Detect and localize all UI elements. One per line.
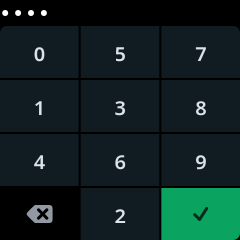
button[interactable]: 3 bbox=[81, 80, 159, 132]
button[interactable]: 8 bbox=[161, 80, 240, 132]
staticText: 2 bbox=[114, 202, 125, 229]
staticText: 4 bbox=[34, 148, 45, 175]
staticText: 5 bbox=[114, 40, 125, 67]
staticText: 3 bbox=[114, 94, 125, 121]
staticText: 7 bbox=[195, 40, 206, 67]
button[interactable]: Delete bbox=[0, 188, 79, 240]
button[interactable]: 9 bbox=[161, 134, 240, 186]
button[interactable]: Confirm bbox=[161, 188, 240, 240]
button[interactable]: 5 bbox=[81, 26, 159, 78]
staticText: 1 bbox=[34, 94, 45, 121]
button[interactable]: 0 bbox=[0, 26, 79, 78]
staticText: 0 bbox=[34, 40, 45, 67]
button[interactable]: 6 bbox=[81, 134, 159, 186]
staticText: 6 bbox=[114, 148, 125, 175]
staticText: 9 bbox=[195, 148, 206, 175]
button[interactable]: 2 bbox=[81, 188, 159, 240]
button[interactable]: 1 bbox=[0, 80, 79, 132]
staticText: 8 bbox=[195, 94, 206, 121]
button[interactable]: 7 bbox=[161, 26, 240, 78]
button[interactable]: 4 bbox=[0, 134, 79, 186]
